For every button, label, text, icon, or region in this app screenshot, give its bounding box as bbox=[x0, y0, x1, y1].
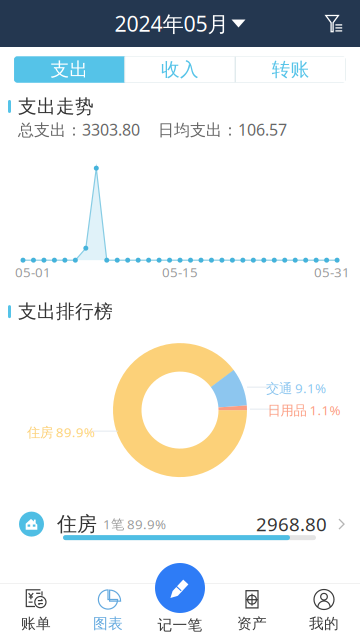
staticText: 支出 bbox=[50, 58, 88, 81]
button[interactable]: 筛选 bbox=[315, 4, 360, 42]
staticText: 账单 bbox=[21, 614, 51, 632]
staticText: 总支出：3303.80 bbox=[18, 119, 140, 140]
button[interactable]: 支出 bbox=[14, 56, 125, 82]
staticText: 05-15 bbox=[162, 263, 198, 281]
staticText: 交通 9.1% bbox=[266, 379, 326, 397]
staticText: 05-01 bbox=[15, 263, 51, 281]
staticText: 图表 bbox=[93, 614, 123, 632]
staticText: 记一笔 bbox=[157, 616, 202, 634]
button[interactable]: 账单 bbox=[0, 577, 72, 640]
staticText: 2024年05月 bbox=[114, 9, 228, 38]
staticText: 住房 bbox=[57, 512, 97, 536]
staticText: 住房 89.9% bbox=[27, 423, 95, 441]
staticText: 支出走势 bbox=[18, 95, 94, 118]
staticText: 2968.80 bbox=[256, 512, 327, 536]
button[interactable]: 我的 bbox=[288, 577, 360, 640]
button[interactable]: 收入 bbox=[125, 56, 235, 82]
staticText: 日用品 1.1% bbox=[267, 401, 340, 419]
staticText: 支出排行榜 bbox=[18, 300, 113, 323]
button[interactable]: 记一笔 bbox=[144, 562, 216, 634]
staticText: 05-31 bbox=[314, 263, 350, 281]
button[interactable]: 住房 bbox=[0, 491, 360, 550]
staticText: 1笔 89.9% bbox=[103, 515, 166, 533]
staticText: 收入 bbox=[161, 58, 199, 81]
button[interactable]: 图表 bbox=[72, 577, 144, 640]
staticText: 日均支出：106.57 bbox=[158, 119, 287, 140]
button[interactable]: 2024年05月 bbox=[104, 3, 255, 44]
staticText: 转账 bbox=[272, 58, 310, 81]
button[interactable]: 资产 bbox=[216, 577, 288, 640]
button[interactable]: 转账 bbox=[235, 56, 346, 82]
staticText: 我的 bbox=[309, 614, 339, 632]
staticText: 资产 bbox=[237, 614, 267, 632]
